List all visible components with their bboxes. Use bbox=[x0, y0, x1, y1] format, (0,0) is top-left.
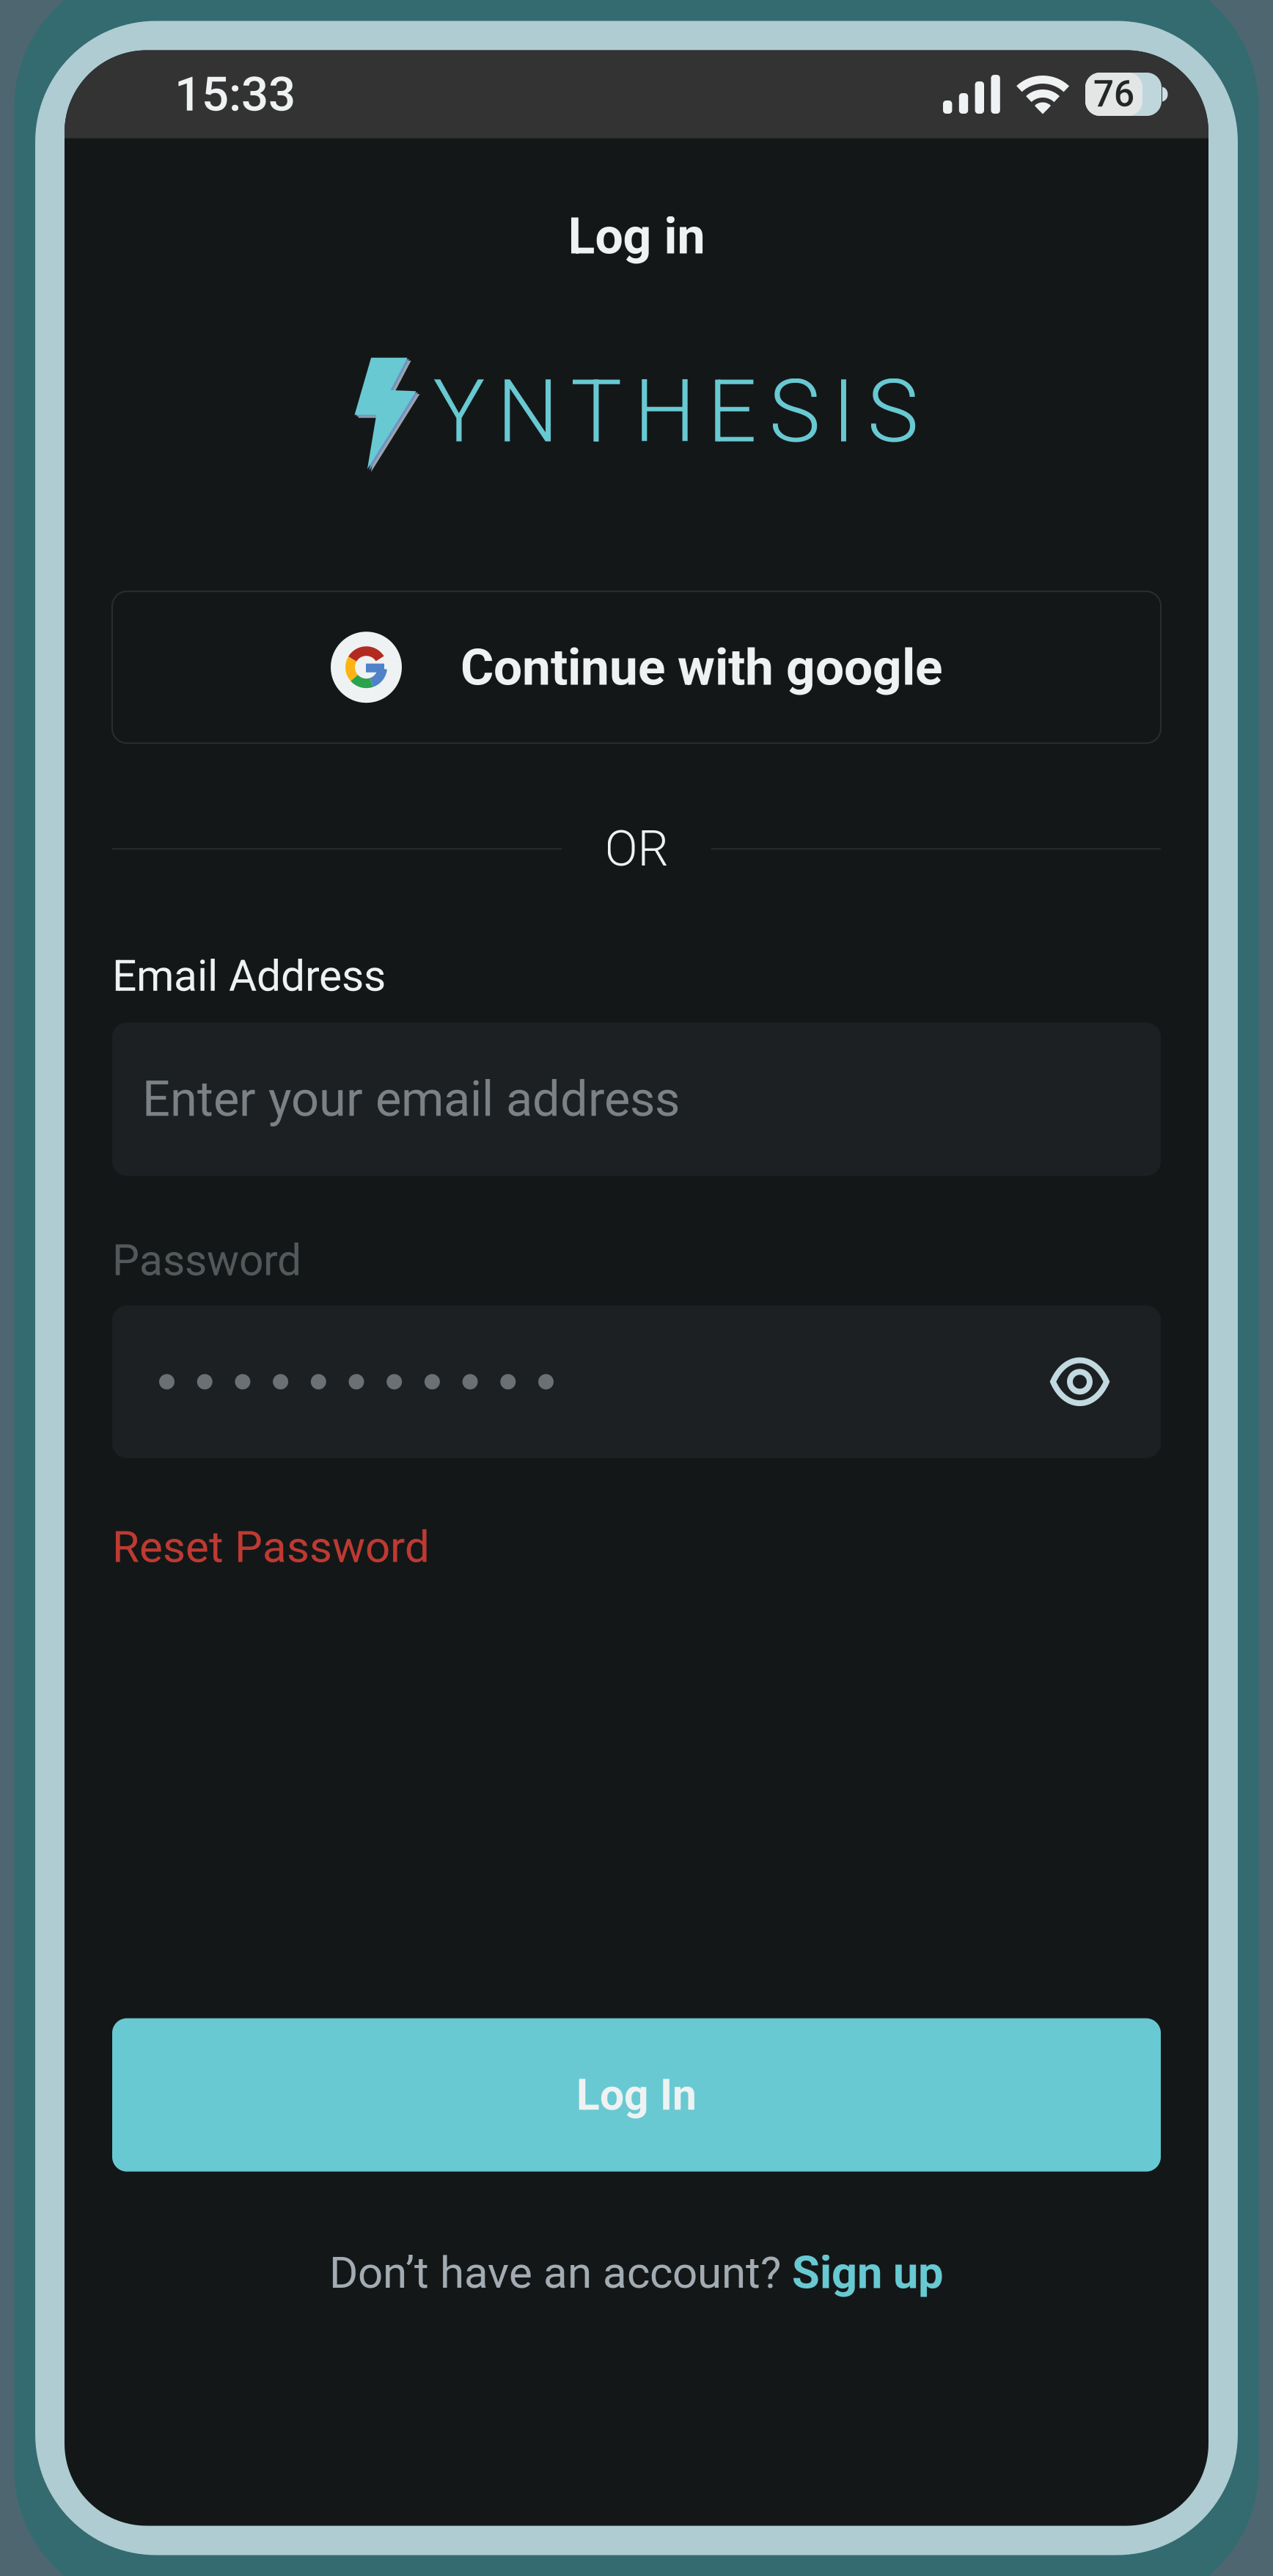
staticText: Sign up bbox=[792, 2246, 944, 2299]
staticText: I bbox=[832, 361, 855, 463]
staticText: OR bbox=[605, 820, 668, 877]
staticText: Log In bbox=[576, 2070, 697, 2120]
staticText: 76 bbox=[1093, 73, 1134, 115]
staticText: H bbox=[634, 361, 696, 463]
staticText: Email Address bbox=[112, 951, 386, 1001]
staticText: Password bbox=[112, 1235, 301, 1286]
staticText: S bbox=[867, 361, 918, 463]
button[interactable]: Don’t have an account? bbox=[329, 2246, 944, 2299]
button[interactable]: Show password bbox=[1050, 1329, 1161, 1435]
staticText: Enter your email address bbox=[142, 1071, 680, 1128]
staticText: S bbox=[769, 361, 820, 463]
button[interactable]: Log In bbox=[112, 2018, 1161, 2172]
staticText: Don’t have an account? bbox=[329, 2247, 792, 2299]
staticText: Y bbox=[433, 361, 485, 463]
staticText: T bbox=[570, 361, 622, 463]
button[interactable]: Reset Password bbox=[112, 1521, 1161, 1573]
staticText: 15:33 bbox=[175, 66, 296, 122]
button[interactable]: Continue with google bbox=[112, 591, 1161, 743]
staticText: N bbox=[497, 361, 558, 463]
staticText: E bbox=[707, 361, 757, 463]
staticText: Log in bbox=[568, 207, 705, 266]
staticText: Reset Password bbox=[112, 1521, 430, 1573]
staticText: Continue with google bbox=[461, 637, 942, 697]
